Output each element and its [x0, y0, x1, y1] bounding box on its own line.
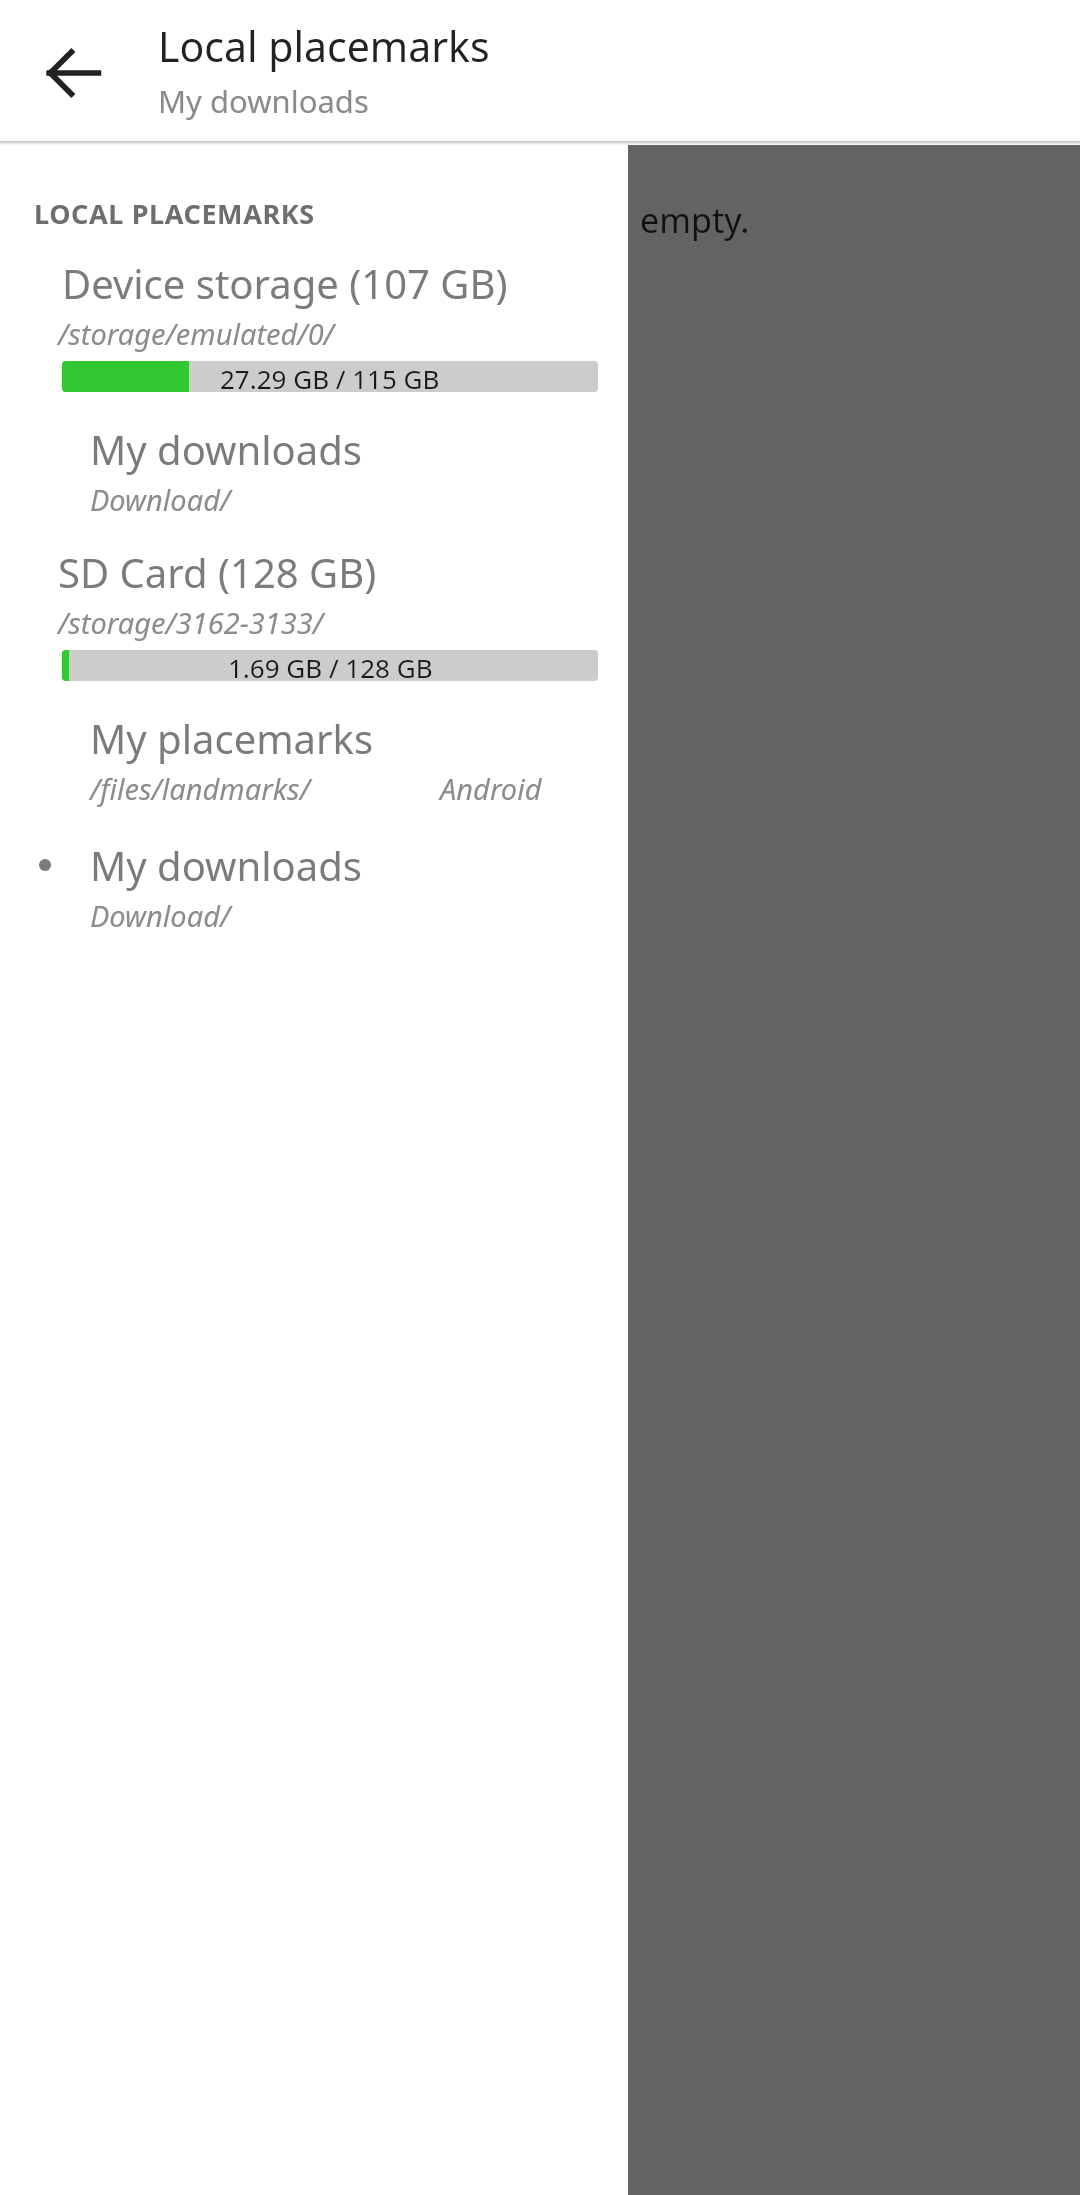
- staticText: My downloads: [158, 80, 369, 122]
- staticText: /storage/3162-3133/: [58, 603, 324, 642]
- button[interactable]: My downloads: [0, 422, 628, 523]
- staticText: My placemarks: [90, 711, 374, 765]
- staticText: 27.29 GB / 115 GB: [220, 361, 440, 392]
- staticText: empty.: [640, 197, 750, 243]
- staticText: Local placemarks: [158, 18, 490, 74]
- staticText: Android: [440, 769, 542, 808]
- staticText: SD Card (128 GB): [58, 545, 377, 599]
- staticText: Download/: [90, 896, 231, 935]
- button[interactable]: SD Card (128 GB): [0, 545, 628, 685]
- staticText: LOCAL PLACEMARKS: [34, 195, 315, 232]
- button[interactable]: My placemarks: [0, 711, 628, 812]
- staticText: /storage/emulated/0/: [58, 314, 334, 353]
- staticText: Download/: [90, 480, 231, 519]
- staticText: 1.69 GB / 128 GB: [228, 650, 433, 681]
- staticText: Device storage (107 GB): [62, 256, 508, 310]
- button[interactable]: Device storage (107 GB): [0, 256, 628, 396]
- staticText: My downloads: [90, 422, 362, 476]
- button[interactable]: Back: [22, 22, 124, 124]
- staticText: /files/landmarks/: [90, 769, 310, 808]
- staticText: My downloads: [90, 838, 362, 892]
- button[interactable]: My downloads: [0, 838, 628, 939]
